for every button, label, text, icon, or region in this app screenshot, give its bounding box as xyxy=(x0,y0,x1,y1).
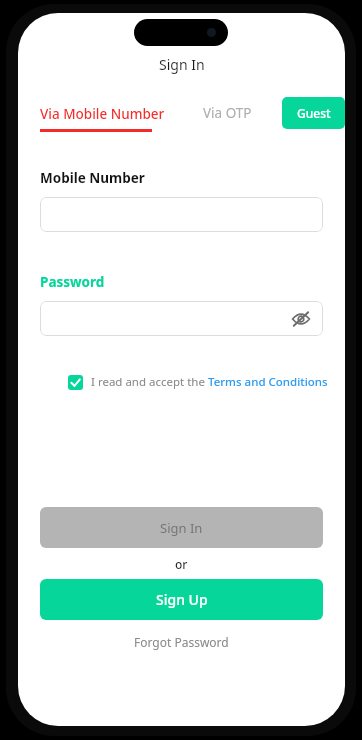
button[interactable]: Forgot Password xyxy=(134,634,229,650)
staticText: Mobile Number xyxy=(40,169,145,187)
button[interactable]: Via OTP xyxy=(203,104,252,122)
staticText: or xyxy=(175,556,188,572)
button[interactable]: Show password xyxy=(40,301,323,336)
staticText: Sign In xyxy=(159,55,205,74)
staticText: Sign Up xyxy=(156,590,208,609)
staticText: Forgot Password xyxy=(134,634,229,650)
button[interactable]: Sign Up xyxy=(40,579,323,620)
button[interactable]: I read and accept the xyxy=(68,374,328,390)
staticText: Guest xyxy=(297,105,331,121)
staticText: I read and accept the xyxy=(91,374,208,390)
staticText: Via Mobile Number xyxy=(40,105,165,123)
button[interactable]: Via Mobile Number xyxy=(40,105,165,132)
button[interactable]: Show password xyxy=(288,306,314,332)
staticText: Via OTP xyxy=(203,104,252,122)
button[interactable] xyxy=(40,197,323,232)
staticText: Password xyxy=(40,273,105,291)
staticText: Terms and Conditions xyxy=(208,374,328,390)
button[interactable]: Guest xyxy=(282,97,345,129)
button[interactable]: Sign In xyxy=(40,507,323,548)
staticText: Sign In xyxy=(160,519,203,537)
